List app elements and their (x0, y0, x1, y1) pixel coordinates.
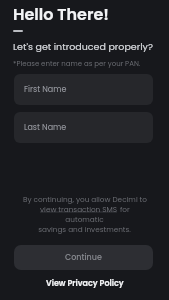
staticText: automatic (65, 214, 104, 224)
staticText: Last Name (24, 122, 67, 133)
button[interactable]: View Privacy Policy (46, 278, 124, 289)
staticText: savings and investments. (38, 224, 131, 234)
button[interactable]: Continue (14, 245, 153, 270)
staticText: Continue (65, 252, 102, 263)
staticText: Let's get introduced properly? (13, 40, 153, 53)
button[interactable]: First Name (14, 74, 153, 105)
button[interactable]: Last Name (14, 112, 153, 143)
staticText: *Please enter name as per your PAN. (13, 59, 141, 69)
staticText: First Name (24, 84, 67, 95)
staticText: Hello There! (13, 3, 109, 25)
staticText: By continuing, you allow Deciml to (23, 194, 147, 204)
staticText: for (118, 204, 130, 214)
staticText: view transaction SMS (40, 204, 118, 214)
